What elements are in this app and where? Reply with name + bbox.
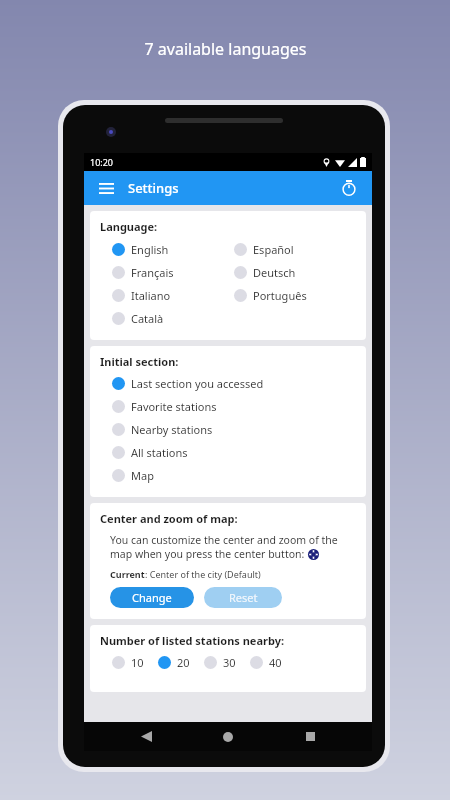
staticText: Language:: [100, 219, 158, 234]
button[interactable]: Map: [112, 464, 154, 487]
staticText: map when you press the center button:: [110, 547, 308, 561]
button[interactable]: Last section you accessed: [112, 372, 264, 395]
button[interactable]: Reset: [204, 587, 282, 608]
button[interactable]: All stations: [112, 441, 188, 464]
staticText: 10: [131, 655, 144, 670]
button[interactable]: Recents: [290, 722, 330, 751]
staticText: Español: [253, 242, 294, 257]
button[interactable]: Timer: [336, 175, 362, 201]
staticText: Français: [131, 265, 174, 280]
button[interactable]: Deutsch: [234, 261, 296, 284]
staticText: Map: [131, 468, 154, 483]
staticText: 20: [177, 655, 190, 670]
staticText: Center and zoom of map:: [100, 511, 238, 526]
staticText: Reset: [229, 590, 258, 605]
staticText: Português: [253, 288, 307, 303]
button[interactable]: Nearby stations: [112, 418, 213, 441]
staticText: Italiano: [131, 288, 171, 303]
staticText: 30: [223, 655, 236, 670]
button[interactable]: Change: [110, 587, 194, 608]
staticText: Initial section:: [100, 354, 179, 369]
staticText: English: [131, 242, 169, 257]
button[interactable]: Italiano: [112, 284, 171, 307]
button[interactable]: Favorite stations: [112, 395, 217, 418]
staticText: : Center of the city (Default): [145, 568, 261, 580]
staticText: Favorite stations: [131, 399, 217, 414]
staticText: You can customize the center and zoom of…: [110, 533, 338, 547]
staticText: Number of listed stations nearby:: [100, 633, 285, 648]
staticText: Change: [132, 590, 172, 605]
staticText: All stations: [131, 445, 188, 460]
button[interactable]: Català: [112, 307, 164, 330]
staticText: Current: [110, 568, 145, 580]
button[interactable]: English: [112, 238, 169, 261]
staticText: Nearby stations: [131, 422, 213, 437]
staticText: 10:20: [90, 156, 114, 168]
staticText: Català: [131, 311, 164, 326]
button[interactable]: 30: [204, 651, 236, 674]
staticText: Deutsch: [253, 265, 296, 280]
button[interactable]: Home: [208, 722, 248, 751]
button[interactable]: 20: [158, 651, 190, 674]
button[interactable]: 10: [112, 651, 144, 674]
button[interactable]: Français: [112, 261, 174, 284]
button[interactable]: Español: [234, 238, 294, 261]
button[interactable]: Back: [126, 722, 166, 751]
staticText: 40: [269, 655, 282, 670]
staticText: Settings: [128, 179, 179, 197]
button[interactable]: Open navigation menu: [94, 176, 118, 200]
button[interactable]: Português: [234, 284, 307, 307]
staticText: 7 available languages: [144, 38, 307, 60]
staticText: Last section you accessed: [131, 376, 264, 391]
button[interactable]: 40: [250, 651, 282, 674]
